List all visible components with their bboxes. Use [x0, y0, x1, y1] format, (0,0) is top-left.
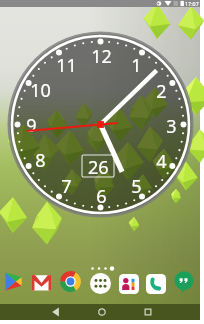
button[interactable]: Gmail	[32, 273, 51, 292]
button[interactable]: Recents	[136, 304, 160, 320]
staticText: 3	[166, 114, 177, 136]
staticText: 26	[88, 155, 109, 177]
button[interactable]: Chrome	[60, 271, 81, 292]
staticText: 12	[91, 44, 112, 66]
button[interactable]: Back	[44, 304, 68, 320]
button[interactable]: All apps	[90, 273, 111, 294]
staticText: 8	[35, 148, 46, 170]
staticText: 5	[131, 174, 142, 196]
staticText: 2	[156, 79, 167, 101]
button[interactable]: Phone	[146, 274, 166, 294]
button[interactable]: Play Store	[4, 272, 23, 291]
staticText: 1	[131, 53, 142, 75]
button[interactable]: Contacts	[119, 274, 139, 294]
staticText: 4	[156, 149, 167, 171]
staticText: 11	[56, 53, 77, 75]
button[interactable]: Home	[90, 304, 114, 320]
staticText: 7	[61, 174, 72, 196]
staticText: 9	[26, 113, 37, 135]
staticText: 17:07	[185, 0, 199, 7]
button[interactable]: Hangouts	[173, 271, 195, 293]
staticText: 6	[96, 184, 107, 206]
staticText: 10	[30, 78, 51, 100]
